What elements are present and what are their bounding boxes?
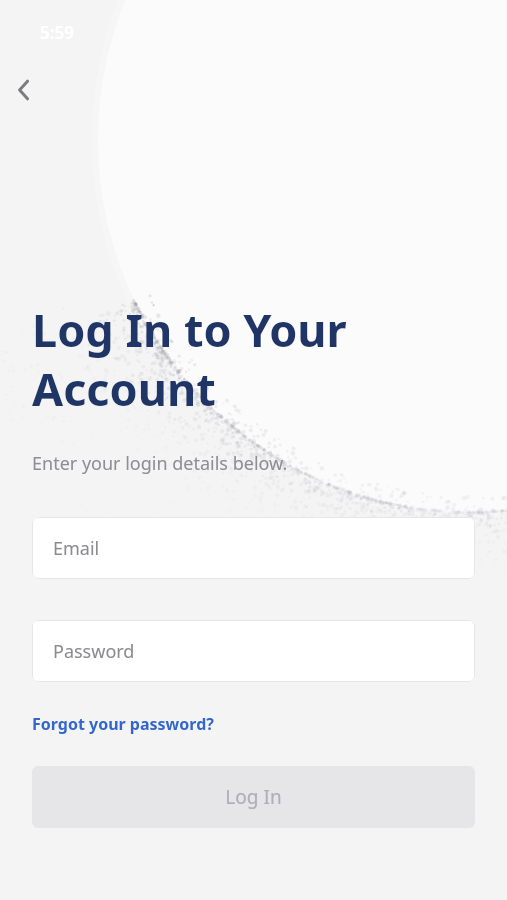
- staticText: Password: [53, 639, 135, 664]
- button[interactable]: Password: [32, 620, 475, 682]
- staticText: Forgot your password?: [32, 713, 214, 735]
- button[interactable]: Back: [2, 68, 46, 112]
- staticText: 5:59: [40, 21, 74, 44]
- staticText: Enter your login details below.: [32, 451, 288, 476]
- staticText: Log In to Your Account: [32, 299, 347, 419]
- staticText: Log In: [225, 784, 282, 810]
- button[interactable]: Log In: [32, 766, 475, 828]
- button[interactable]: Forgot your password?: [32, 711, 214, 737]
- staticText: Email: [53, 536, 100, 561]
- button[interactable]: Email: [32, 517, 475, 579]
